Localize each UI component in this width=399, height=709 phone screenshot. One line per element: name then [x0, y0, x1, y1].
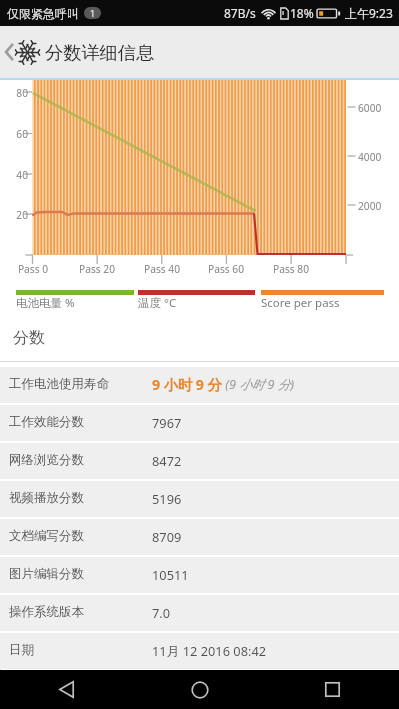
staticText: 6000: [358, 101, 398, 115]
staticText: 仅限紧急呼叫: [7, 6, 79, 21]
staticText: Pass 20: [72, 262, 122, 276]
staticText: 18%: [290, 5, 314, 21]
staticText: Pass 80: [266, 262, 316, 276]
button[interactable]: 图片编辑分数: [0, 557, 399, 593]
staticText: 上午9:23: [345, 5, 393, 21]
button[interactable]: 文档编写分数: [0, 519, 399, 555]
staticText: 11月 12 2016 08:42: [152, 642, 267, 659]
staticText: 图片编辑分数: [9, 566, 152, 582]
staticText: 分数详细信息: [45, 41, 155, 64]
staticText: 工作效能分数: [9, 414, 152, 430]
staticText: 操作系统版本: [9, 604, 152, 620]
staticText: 80: [0, 86, 28, 100]
staticText: Pass 40: [137, 262, 187, 276]
staticText: 60: [0, 127, 28, 141]
button[interactable]: 操作系统版本: [0, 595, 399, 631]
staticText: 视频播放分数: [9, 490, 152, 506]
button[interactable]: Back: [0, 26, 399, 78]
staticText: 8472: [152, 452, 182, 469]
staticText: 10511: [152, 566, 189, 583]
staticText: 电池电量 %: [16, 295, 75, 311]
staticText: 20: [0, 208, 28, 222]
staticText: 7967: [152, 414, 182, 431]
staticText: 9 小时 9 分: [152, 375, 222, 394]
staticText: 文档编写分数: [9, 528, 152, 544]
staticText: 40: [0, 168, 28, 182]
staticText: 87B/s: [224, 5, 256, 21]
button[interactable]: Back: [0, 670, 133, 709]
staticText: 7.0: [152, 604, 171, 621]
staticText: 5196: [152, 490, 182, 507]
staticText: (9 小时 9 分): [222, 376, 295, 393]
staticText: 4000: [358, 150, 398, 164]
button[interactable]: 工作效能分数: [0, 405, 399, 441]
staticText: Pass 0: [8, 262, 58, 276]
staticText: 温度 °C: [138, 295, 177, 311]
staticText: 1: [90, 7, 96, 19]
button[interactable]: Recent apps: [266, 670, 399, 709]
staticText: 工作电池使用寿命: [9, 376, 152, 392]
button[interactable]: 日期: [0, 633, 399, 669]
staticText: 日期: [9, 642, 152, 658]
staticText: 2000: [358, 199, 398, 213]
button[interactable]: 工作电池使用寿命: [0, 367, 399, 403]
button[interactable]: 视频播放分数: [0, 481, 399, 517]
button[interactable]: Home: [133, 670, 266, 709]
button[interactable]: 网络浏览分数: [0, 443, 399, 479]
staticText: 网络浏览分数: [9, 452, 152, 468]
staticText: 分数: [13, 328, 45, 348]
other: Back: [4, 43, 15, 61]
staticText: Pass 60: [201, 262, 251, 276]
staticText: 8709: [152, 528, 182, 545]
staticText: Score per pass: [261, 295, 340, 311]
